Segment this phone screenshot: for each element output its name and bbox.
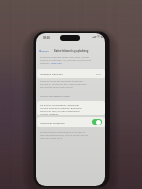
staticText: tilstand er god, og det understøtter xyxy=(40,109,80,112)
staticText: normal ydeevne. xyxy=(40,112,59,115)
staticText: batteriet. xyxy=(40,61,51,64)
staticText: iPhone bruger maskinlæring til at lære a… xyxy=(40,130,86,133)
staticText: Optimeret opladning xyxy=(40,121,65,124)
staticText: dine opladningsvaner, så den venter med … xyxy=(40,133,89,136)
staticText: kan betyde færre timers brug. xyxy=(40,85,74,88)
button[interactable]: Optimeret opladning xyxy=(37,117,105,127)
staticText: 09:38 xyxy=(43,36,50,40)
staticText: forhold til, da det var nyt. Lavere kapa… xyxy=(40,82,87,85)
staticText: Batteri xyxy=(41,49,49,52)
staticText: reducerer ydeevnen. Se, hvordan du passe… xyxy=(40,58,92,61)
staticText: normal maksimal ydeevne. Batteriets xyxy=(40,106,82,109)
staticText: Dette er et mål for batteriets kapacitet… xyxy=(40,79,84,82)
button[interactable]: Batteri xyxy=(39,49,49,52)
staticText: Dit batteri understøtter i øjeblikket xyxy=(40,103,79,106)
staticText: SVAR PÅ BATTERIETS ALDER xyxy=(40,95,70,98)
staticText: Batteriets kapacitet falder med tiden, h… xyxy=(40,55,89,58)
staticText: Maksimal kapacitet xyxy=(40,72,63,75)
staticText: Mere info xyxy=(51,61,62,64)
staticText: lade op til over 80 %. xyxy=(40,136,63,139)
staticText: Batteritilstand og opladning xyxy=(54,49,89,52)
staticText: 92 % xyxy=(96,72,102,75)
button[interactable]: Optimeret batteriopladning til xyxy=(92,119,102,125)
button[interactable]: Maksimal kapacitet xyxy=(37,69,105,78)
